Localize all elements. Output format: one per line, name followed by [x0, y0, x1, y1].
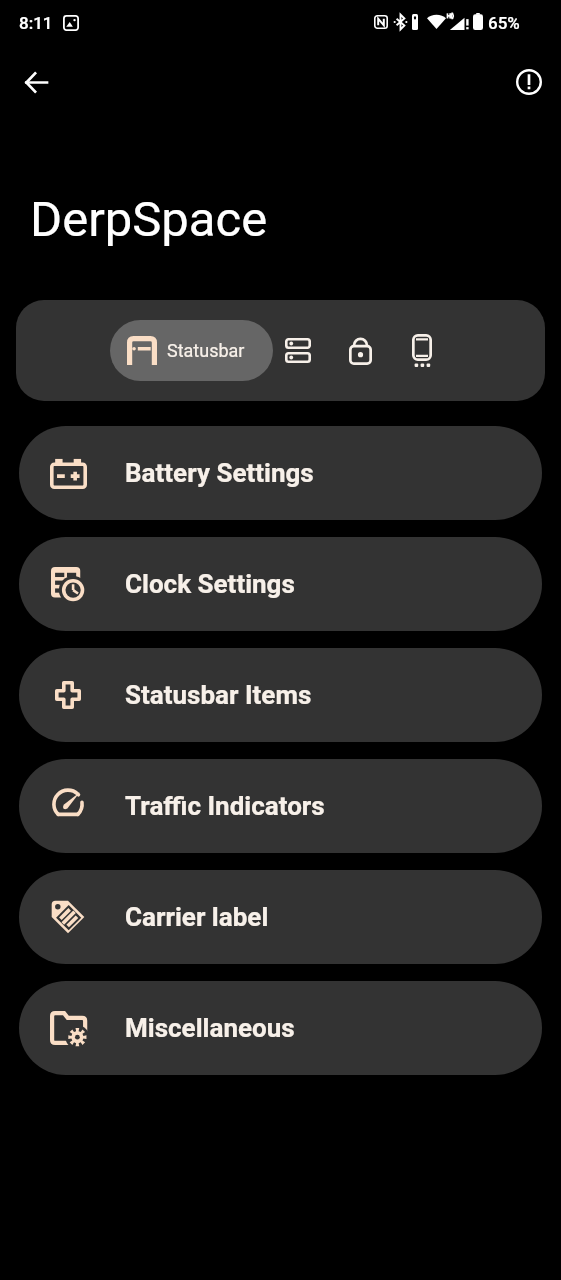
button[interactable]: Carrier label [19, 870, 542, 964]
button[interactable]: Device [398, 326, 446, 374]
button[interactable]: Miscellaneous [19, 981, 542, 1075]
button[interactable]: Traffic Indicators [19, 759, 542, 853]
staticText: Battery Settings [125, 458, 314, 488]
button[interactable]: Clock Settings [19, 537, 542, 631]
staticText: Clock Settings [125, 569, 295, 599]
staticText: Statusbar [167, 340, 245, 361]
button[interactable]: Battery Settings [19, 426, 542, 520]
staticText: Carrier label [125, 902, 269, 932]
button[interactable]: Statusbar Items [19, 648, 542, 742]
staticText: Miscellaneous [125, 1013, 295, 1043]
staticText: 65% [488, 13, 520, 33]
button[interactable]: Back [14, 60, 58, 104]
button[interactable]: Info [507, 60, 551, 104]
staticText: 8:11 [19, 13, 53, 33]
button[interactable]: Lock screen [336, 326, 384, 374]
button[interactable]: Quick settings [274, 326, 322, 374]
staticText: DerpSpace [30, 191, 268, 248]
button[interactable]: Statusbar [110, 320, 273, 381]
staticText: Statusbar Items [125, 680, 312, 710]
staticText: Traffic Indicators [125, 791, 325, 821]
